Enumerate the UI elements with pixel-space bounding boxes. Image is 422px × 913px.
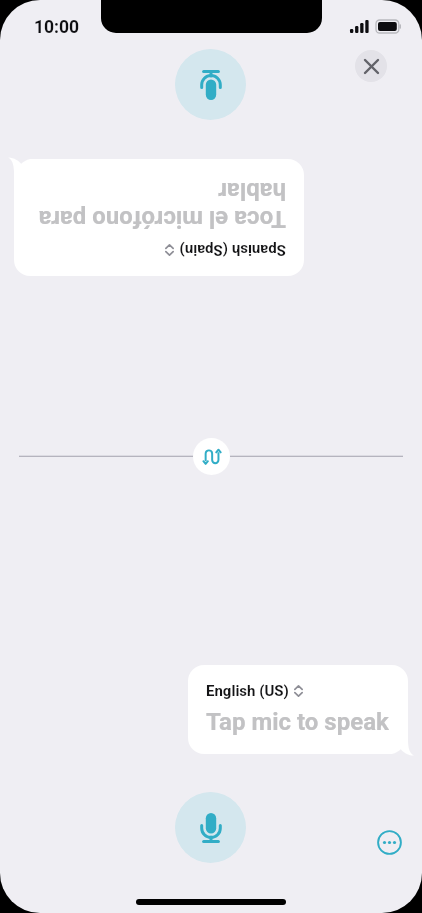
button[interactable]: More options [375,828,403,856]
staticText: Toca el micrófono para hablar [30,177,286,233]
button[interactable]: Microphone Spanish [175,49,246,120]
button[interactable]: Close [355,50,387,82]
button[interactable]: Microphone English [175,792,246,863]
staticText: Spanish (Spain) [179,241,286,259]
button[interactable]: Swap languages [193,438,230,475]
staticText: 10:00 [34,17,80,38]
staticText: Tap mic to speak [206,708,389,736]
staticText: English (US) [206,682,289,700]
